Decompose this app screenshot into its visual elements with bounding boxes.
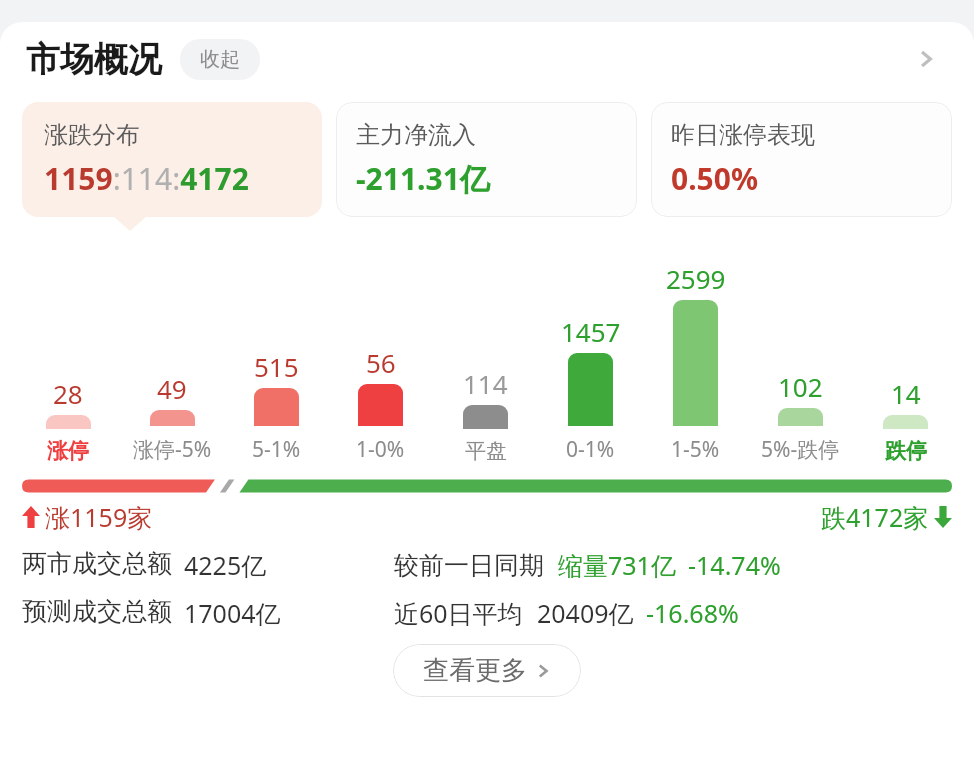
button[interactable]: 114 bbox=[433, 366, 538, 464]
staticText: 1159:114:4172 bbox=[44, 158, 249, 199]
staticText: 1-5% bbox=[671, 435, 720, 464]
button[interactable]: 查看更多 bbox=[393, 644, 581, 697]
staticText: 56 bbox=[366, 345, 396, 380]
button[interactable]: 涨跌分布 bbox=[22, 102, 322, 217]
staticText: 20409亿 bbox=[537, 596, 634, 630]
staticText: 1457 bbox=[561, 314, 621, 349]
button[interactable]: 昨日涨停表现 bbox=[651, 102, 952, 217]
staticText: 2599 bbox=[666, 261, 726, 296]
button[interactable]: 515 bbox=[224, 349, 328, 464]
staticText: 17004亿 bbox=[184, 596, 281, 630]
staticText: 5%-跌停 bbox=[761, 435, 840, 464]
staticText: 49 bbox=[157, 371, 187, 406]
staticText: 0.50% bbox=[671, 158, 758, 199]
staticText: 两市成交总额 bbox=[22, 548, 172, 579]
staticText: 查看更多 bbox=[423, 654, 527, 687]
staticText: 跌4172家 bbox=[821, 500, 929, 534]
staticText: 515 bbox=[254, 349, 299, 384]
staticText: -211.31亿 bbox=[356, 158, 490, 199]
button[interactable]: 56 bbox=[328, 345, 433, 464]
button[interactable]: 展开更多 bbox=[904, 37, 948, 81]
staticText: 1-0% bbox=[356, 435, 405, 464]
button[interactable]: 14 bbox=[853, 376, 958, 464]
button[interactable]: 1457 bbox=[538, 314, 643, 464]
staticText: 涨1159家 bbox=[45, 500, 153, 534]
staticText: 昨日涨停表现 bbox=[671, 120, 815, 150]
button[interactable]: 28 bbox=[16, 376, 120, 464]
staticText: 涨停 bbox=[47, 438, 89, 464]
staticText: 4225亿 bbox=[184, 548, 267, 582]
staticText: -16.68% bbox=[646, 596, 739, 630]
staticText: 0-1% bbox=[566, 435, 615, 464]
staticText: 市场概况 bbox=[26, 38, 162, 81]
staticText: 114 bbox=[463, 366, 508, 401]
button[interactable]: 主力净流入 bbox=[336, 102, 637, 217]
staticText: 14 bbox=[891, 376, 921, 411]
staticText: 近60日平均 bbox=[394, 596, 523, 630]
staticText: 平盘 bbox=[465, 438, 507, 464]
button[interactable]: 收起 bbox=[180, 39, 260, 80]
staticText: 5-1% bbox=[252, 435, 301, 464]
staticText: -14.74% bbox=[688, 548, 781, 582]
staticText: 较前一日同期 bbox=[394, 550, 544, 581]
button[interactable]: 102 bbox=[748, 369, 853, 464]
staticText: 收起 bbox=[200, 47, 240, 72]
staticText: 涨停-5% bbox=[133, 435, 212, 464]
button[interactable]: 2599 bbox=[643, 261, 748, 464]
staticText: 主力净流入 bbox=[356, 120, 476, 150]
staticText: 缩量731亿 bbox=[558, 548, 676, 582]
staticText: 28 bbox=[53, 376, 83, 411]
staticText: 涨跌分布 bbox=[44, 120, 140, 150]
staticText: 跌停 bbox=[885, 438, 927, 464]
button[interactable]: 49 bbox=[120, 371, 224, 464]
staticText: 预测成交总额 bbox=[22, 596, 172, 627]
staticText: 102 bbox=[778, 369, 823, 404]
